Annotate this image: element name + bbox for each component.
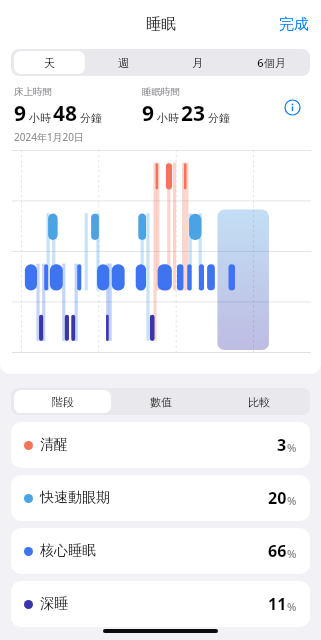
button[interactable]: 快速動眼期 (11, 475, 310, 521)
staticText: 20 (268, 487, 287, 509)
staticText: 清醒 (40, 436, 277, 454)
button[interactable]: 完成 (267, 11, 321, 38)
staticText: 完成 (279, 15, 309, 34)
button[interactable]: 天 (14, 51, 85, 74)
button[interactable]: 月 (161, 51, 233, 74)
button[interactable]: 週 (87, 51, 159, 74)
staticText: 2024年1月20日 (14, 130, 85, 144)
button[interactable]: 比較 (211, 390, 307, 413)
button[interactable]: 數值 (113, 390, 209, 413)
staticText: 48 (53, 99, 78, 128)
staticText: % (287, 599, 297, 614)
button[interactable]: 6個月 (235, 51, 307, 74)
staticText: 6個月 (257, 55, 286, 70)
staticText: 23 (181, 99, 206, 128)
staticText: 11 (268, 593, 287, 615)
staticText: % (287, 493, 297, 508)
staticText: % (287, 440, 297, 455)
staticText: 睡眠時間 (142, 86, 180, 98)
staticText: 66 (268, 540, 287, 562)
staticText: 數值 (150, 395, 172, 409)
staticText: 睡眠 (146, 15, 176, 34)
staticText: % (287, 546, 297, 561)
staticText: 週 (118, 56, 129, 70)
staticText: 3 (277, 434, 287, 456)
button[interactable]: 清醒 (11, 422, 310, 468)
staticText: 床上時間 (14, 86, 52, 98)
staticText: 小時 (29, 111, 51, 125)
staticText: 小時 (157, 111, 179, 125)
staticText: 9 (14, 99, 27, 128)
button[interactable]: Info (277, 92, 307, 122)
staticText: 分鐘 (208, 111, 230, 125)
staticText: 9 (142, 99, 155, 128)
staticText: 比較 (248, 395, 270, 409)
staticText: 深睡 (40, 595, 268, 613)
staticText: 快速動眼期 (40, 489, 268, 507)
button[interactable]: 核心睡眠 (11, 528, 310, 574)
staticText: 核心睡眠 (40, 542, 268, 560)
staticText: 階段 (52, 395, 74, 409)
staticText: 天 (44, 56, 55, 70)
staticText: 分鐘 (80, 111, 102, 125)
button[interactable]: 階段 (14, 390, 111, 413)
button[interactable]: 深睡 (11, 581, 310, 627)
staticText: 月 (192, 56, 203, 70)
